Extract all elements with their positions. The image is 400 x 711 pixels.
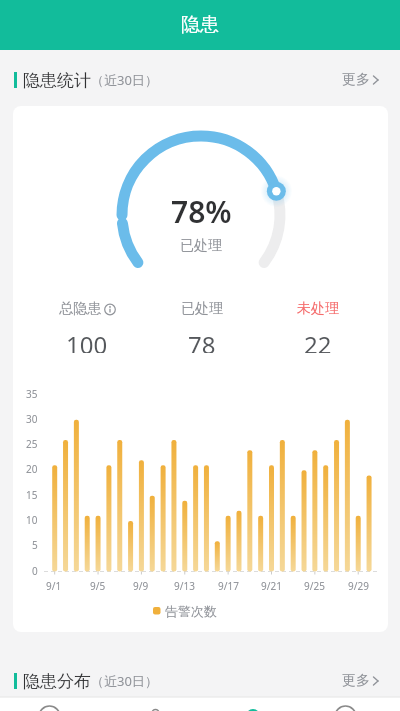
staticText: （近30日） [91,71,158,89]
staticText: 告警次数 [165,603,217,619]
staticText: 隐患 [181,13,219,37]
staticText: 更多 [342,71,370,89]
staticText: 78% [171,191,232,229]
staticText: 10 [26,513,38,527]
staticText: 25 [26,437,38,451]
staticText: 9/13 [174,579,195,593]
button[interactable]: 更多 [342,672,380,690]
staticText: 35 [26,387,38,401]
button[interactable] [200,697,300,711]
staticText: 已处理 [180,237,222,254]
staticText: 已处理 [181,300,223,317]
staticText: 9/21 [261,579,282,593]
staticText: 未处理 [297,300,339,317]
button[interactable] [300,697,400,711]
staticText: 隐患分布 [23,671,91,692]
button[interactable] [100,697,200,711]
staticText: （近30日） [91,672,158,690]
staticText: 9/9 [133,579,149,593]
staticText: 9/29 [348,579,369,593]
staticText: 100 [66,328,108,353]
button[interactable]: 更多 [342,71,380,89]
staticText: 9/25 [304,579,325,593]
staticText: 15 [26,488,38,502]
staticText: 更多 [342,672,370,690]
staticText: 78 [188,328,216,353]
staticText: 总隐患 [59,300,101,317]
staticText: 20 [26,462,38,476]
staticText: 5 [32,538,38,552]
staticText: 隐患统计 [23,70,91,91]
staticText: 0 [32,564,38,578]
staticText: 9/1 [46,579,62,593]
staticText: 30 [26,412,38,426]
staticText: 9/17 [218,579,239,593]
button[interactable] [0,697,100,711]
staticText: 22 [304,328,332,353]
staticText: 9/5 [90,579,106,593]
